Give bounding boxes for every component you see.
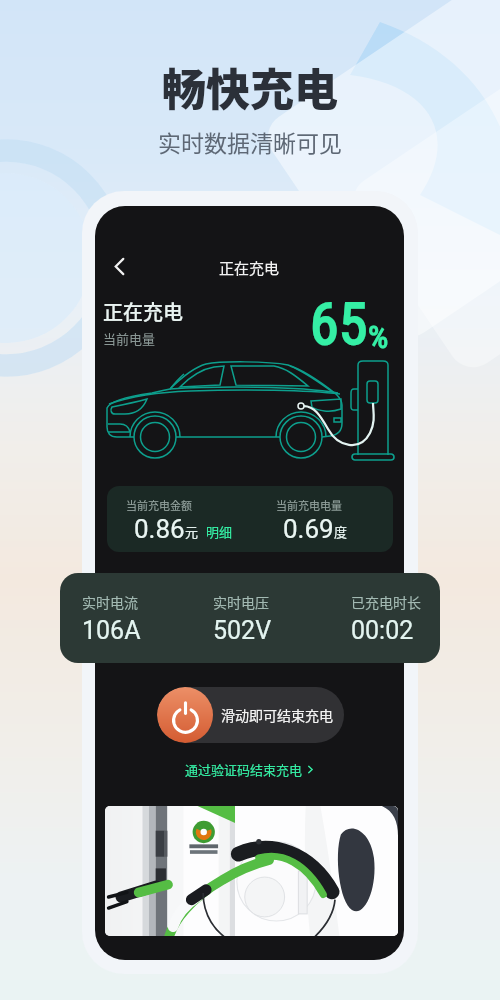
button[interactable]: [105, 806, 398, 936]
staticText: 已充电时长: [351, 592, 421, 612]
staticText: 通过验证码结束充电: [185, 760, 303, 779]
staticText: 当前充电金额: [126, 497, 192, 513]
staticText: 滑动即可结束充电: [221, 705, 333, 725]
button[interactable]: 通过验证码结束充电: [179, 756, 321, 783]
staticText: 实时电压: [213, 592, 269, 612]
staticText: 0.86: [134, 514, 185, 544]
staticText: 当前充电电量: [276, 497, 342, 513]
staticText: 正在充电: [103, 297, 183, 326]
staticText: 度: [334, 522, 348, 541]
staticText: 元: [185, 522, 199, 541]
staticText: 实时电流: [82, 592, 138, 612]
staticText: 当前电量: [103, 329, 156, 348]
staticText: 502V: [213, 616, 272, 645]
staticText: 明细: [206, 522, 233, 541]
staticText: %: [368, 318, 389, 356]
staticText: 畅快充电: [162, 55, 338, 119]
staticText: 实时数据清晰可见: [158, 125, 342, 158]
staticText: 65: [310, 290, 368, 358]
staticText: 106A: [82, 616, 141, 645]
staticText: 0.69: [283, 514, 334, 544]
button[interactable]: 当前充电金额: [107, 486, 393, 552]
staticText: 正在充电: [219, 257, 280, 279]
button[interactable]: Back: [100, 247, 138, 285]
staticText: 00:02: [351, 616, 414, 645]
button[interactable]: 实时电流: [60, 573, 440, 663]
button[interactable]: 滑动即可结束充电: [157, 687, 344, 743]
